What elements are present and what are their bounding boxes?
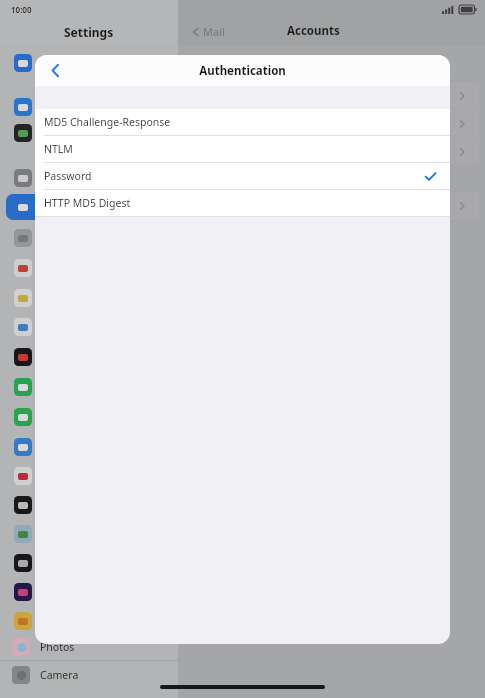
staticText: Camera <box>40 668 79 682</box>
staticText: Settings <box>64 24 114 40</box>
button[interactable]: Photos <box>0 633 178 660</box>
staticText: Mail <box>203 24 225 39</box>
button[interactable]: HTTP MD5 Digest <box>35 190 450 216</box>
button[interactable]: Back <box>35 55 75 86</box>
staticText: Photos <box>40 640 75 654</box>
staticText: 10:00 <box>11 4 32 15</box>
button[interactable]: NTLM <box>35 136 450 162</box>
button[interactable]: Password <box>35 163 450 189</box>
staticText: MD5 Challenge-Response <box>44 115 436 129</box>
button[interactable]: Camera <box>0 661 178 688</box>
staticText: Password <box>44 169 425 183</box>
button[interactable]: MD5 Challenge-Response <box>35 109 450 135</box>
staticText: Accounts <box>287 23 340 39</box>
staticText: NTLM <box>44 142 436 156</box>
staticText: Authentication <box>199 63 286 79</box>
staticText: HTTP MD5 Digest <box>44 196 436 210</box>
